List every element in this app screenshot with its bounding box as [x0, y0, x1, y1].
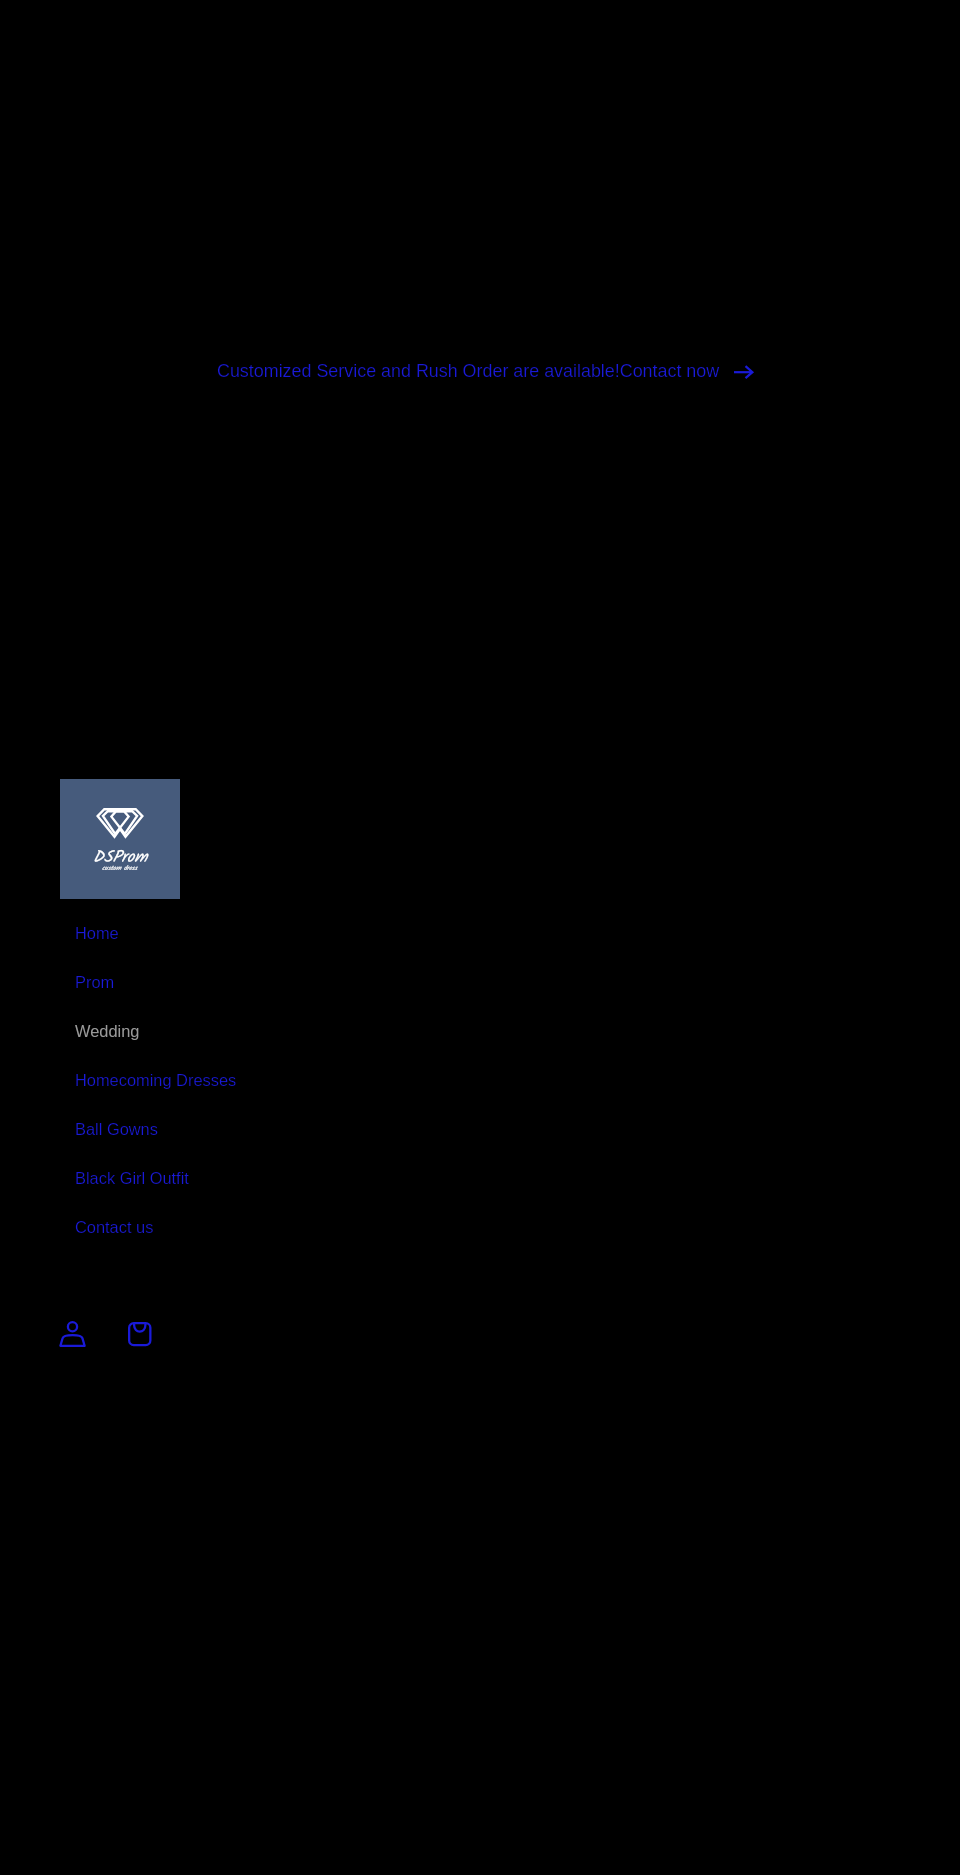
- staticText: DSProm: [93, 844, 148, 870]
- button[interactable]: Account: [54, 1308, 91, 1352]
- staticText: Home: [75, 924, 119, 942]
- button[interactable]: Wedding: [0, 1022, 960, 1071]
- button[interactable]: Black Girl Outfit: [0, 1169, 960, 1218]
- button[interactable]: Home: [0, 924, 960, 973]
- staticText: Contact us: [75, 1218, 154, 1236]
- button[interactable]: Homecoming Dresses: [0, 1071, 960, 1120]
- button[interactable]: DSProm custom dress logo: [60, 779, 180, 899]
- button[interactable]: Prom: [0, 973, 960, 1022]
- button[interactable]: Cart: [120, 1308, 157, 1352]
- button[interactable]: Ball Gowns: [0, 1120, 960, 1169]
- staticText: Customized Service and Rush Order are av…: [217, 361, 720, 381]
- staticText: Prom: [75, 973, 115, 991]
- staticText: Wedding: [75, 1022, 140, 1040]
- staticText: Ball Gowns: [75, 1120, 158, 1138]
- staticText: custom dress: [102, 863, 138, 873]
- staticText: Black Girl Outfit: [75, 1169, 189, 1187]
- staticText: Homecoming Dresses: [75, 1071, 237, 1089]
- button[interactable]: Contact us: [0, 1218, 960, 1267]
- button[interactable]: Customized Service and Rush Order are av…: [9, 350, 960, 392]
